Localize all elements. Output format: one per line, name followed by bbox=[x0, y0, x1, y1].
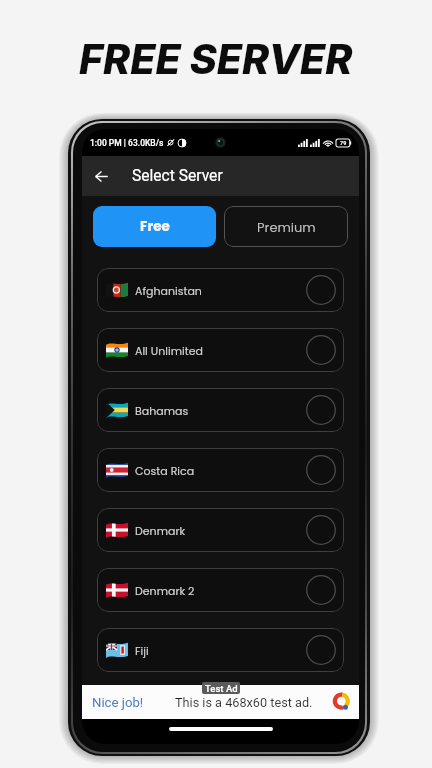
button[interactable]: Costa Rica bbox=[97, 448, 344, 492]
button[interactable]: Premium bbox=[224, 206, 348, 247]
staticText: FREE SERVER bbox=[79, 34, 353, 84]
staticText: Denmark 2 bbox=[135, 583, 195, 598]
button[interactable]: Denmark bbox=[97, 508, 344, 552]
staticText: Premium bbox=[257, 218, 316, 236]
button[interactable]: Free bbox=[93, 206, 216, 247]
staticText: Denmark bbox=[135, 523, 186, 538]
staticText: 1:00 PM | 63.0KB/s bbox=[90, 138, 164, 148]
staticText: Select Server bbox=[132, 167, 223, 185]
staticText: Afghanistan bbox=[135, 283, 202, 298]
staticText: Test Ad bbox=[205, 683, 238, 694]
button[interactable]: Back bbox=[82, 156, 120, 196]
button[interactable]: Fiji bbox=[97, 628, 344, 672]
staticText: Bahamas bbox=[135, 403, 189, 418]
staticText: All Unlimited bbox=[135, 343, 203, 358]
staticText: Free bbox=[140, 217, 170, 236]
button[interactable]: All Unlimited bbox=[97, 328, 344, 372]
staticText: Fiji bbox=[135, 643, 149, 658]
button[interactable]: Afghanistan bbox=[97, 268, 344, 312]
button[interactable]: Bahamas bbox=[97, 388, 344, 432]
staticText: Nice job! bbox=[92, 695, 144, 710]
button[interactable]: Denmark 2 bbox=[97, 568, 344, 612]
staticText: This is a 468x60 test ad. bbox=[175, 695, 313, 710]
staticText: Costa Rica bbox=[135, 463, 195, 478]
staticText: 79 bbox=[340, 140, 347, 146]
